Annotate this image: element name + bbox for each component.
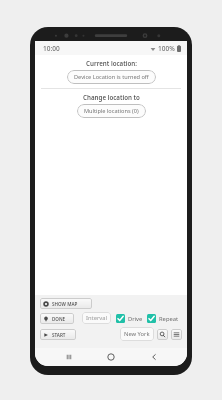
button[interactable]: Home (102, 348, 120, 366)
staticText: Interval (86, 314, 107, 322)
staticText: START (52, 332, 66, 338)
staticText: Multiple locations (0) (84, 107, 139, 115)
button[interactable]: Multiple locations (0) (77, 104, 146, 118)
button[interactable]: Drive (116, 314, 143, 323)
button[interactable]: Repeat (147, 314, 179, 323)
button[interactable]: DONE (40, 313, 74, 324)
staticText: SHOW MAP (52, 301, 78, 307)
button[interactable]: Back (145, 348, 163, 366)
button[interactable]: Interval (82, 312, 111, 324)
staticText: 100% (158, 44, 175, 53)
button[interactable]: Menu (171, 329, 182, 340)
button[interactable]: START (40, 329, 76, 340)
staticText: New York (124, 330, 150, 338)
staticText: 10:00 (43, 44, 60, 53)
button[interactable]: Device Location is turned off (67, 70, 156, 84)
staticText: Repeat (159, 315, 179, 323)
button[interactable]: Recent apps (60, 348, 78, 366)
button[interactable]: Search (157, 329, 168, 340)
button[interactable]: New York (120, 327, 154, 341)
staticText: DONE (52, 316, 66, 322)
staticText: Current location: (86, 59, 137, 67)
staticText: Device Location is turned off (74, 73, 149, 81)
staticText: Drive (128, 315, 143, 323)
staticText: Change location to (83, 93, 140, 101)
button[interactable]: SHOW MAP (40, 298, 92, 309)
